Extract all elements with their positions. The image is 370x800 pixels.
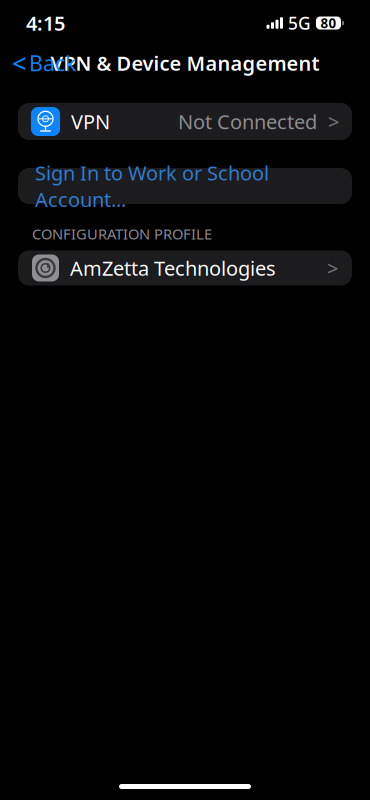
button[interactable]: VPN [18,103,352,140]
staticText: 4:15 [26,10,65,36]
staticText: > [327,255,338,281]
button[interactable]: Sign In to Work or School Account... [18,168,352,204]
staticText: Back [29,49,76,77]
button[interactable]: AmZetta Technologies [18,250,352,285]
staticText: VPN [71,108,110,135]
staticText: 5G [288,11,311,34]
staticText: < [12,46,26,80]
staticText: VPN & Device Management [50,50,319,76]
staticText: > [328,108,339,135]
staticText: Sign In to Work or School Account... [35,159,269,212]
staticText: 80 [320,14,336,32]
button[interactable]: < [2,40,86,86]
staticText: AmZetta Technologies [70,255,276,281]
staticText: Not Connected [178,108,317,135]
staticText: CONFIGURATION PROFILE [32,224,212,243]
